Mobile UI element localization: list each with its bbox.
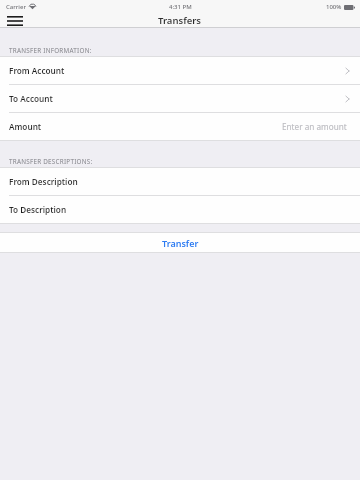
staticText: To Description <box>9 204 67 215</box>
staticText: Carrier <box>6 3 26 11</box>
staticText: Amount <box>9 121 42 132</box>
staticText: TRANSFER INFORMATION: <box>9 46 92 55</box>
staticText: Transfer <box>162 237 199 249</box>
staticText: Enter an amount <box>282 121 347 132</box>
button[interactable]: Amount <box>0 113 360 140</box>
staticText: From Account <box>9 65 65 76</box>
button[interactable]: To Account <box>0 85 360 112</box>
button[interactable]: Menu <box>4 14 26 28</box>
button[interactable]: To Description <box>0 196 360 223</box>
staticText: TRANSFER DESCRIPTIONS: <box>9 157 93 166</box>
button[interactable]: Transfer <box>0 233 360 252</box>
staticText: 100% <box>326 3 342 11</box>
staticText: To Account <box>9 93 53 104</box>
staticText: 4:31 PM <box>169 3 192 11</box>
staticText: From Description <box>9 176 78 187</box>
button[interactable]: From Account <box>0 57 360 84</box>
button[interactable]: From Description <box>0 168 360 195</box>
staticText: Transfers <box>158 14 202 27</box>
